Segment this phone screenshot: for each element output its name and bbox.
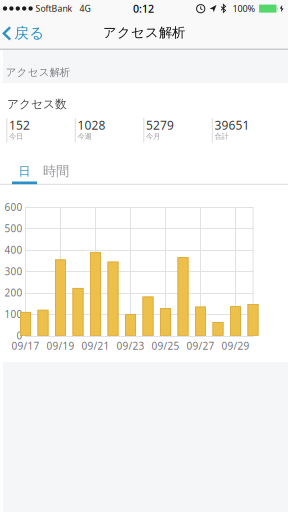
staticText: 日: [18, 164, 30, 178]
staticText: 今週: [77, 132, 91, 141]
staticText: 1028: [77, 117, 105, 133]
staticText: 39651: [214, 117, 249, 133]
staticText: 09/25: [151, 339, 179, 353]
staticText: 今日: [9, 132, 23, 141]
staticText: 09/29: [221, 339, 249, 353]
staticText: アクセス解析: [103, 24, 185, 41]
staticText: 100%: [232, 2, 255, 15]
staticText: アクセス数: [7, 97, 67, 112]
staticText: 500: [4, 222, 22, 235]
button[interactable]: 戻る: [2, 17, 48, 48]
staticText: 09/19: [46, 339, 74, 353]
staticText: 09/27: [186, 339, 214, 353]
staticText: 4G: [79, 3, 90, 14]
staticText: 09/23: [116, 339, 144, 353]
staticText: 0: [16, 329, 22, 342]
staticText: 300: [4, 264, 22, 278]
staticText: 合計: [214, 132, 228, 141]
staticText: 今月: [146, 132, 160, 141]
staticText: 100: [4, 307, 22, 321]
button[interactable]: 日: [12, 160, 37, 182]
button[interactable]: 時間: [39, 160, 73, 182]
staticText: SoftBank: [35, 3, 72, 14]
staticText: 152: [9, 117, 30, 133]
staticText: アクセス解析: [6, 66, 70, 79]
staticText: 0:12: [133, 1, 154, 16]
staticText: 09/21: [81, 339, 109, 353]
staticText: 時間: [43, 163, 69, 179]
staticText: 600: [4, 200, 22, 214]
staticText: 5279: [146, 117, 174, 133]
staticText: 09/17: [11, 339, 39, 353]
staticText: 400: [4, 243, 22, 257]
staticText: 200: [4, 286, 22, 299]
staticText: 戻る: [14, 24, 44, 42]
